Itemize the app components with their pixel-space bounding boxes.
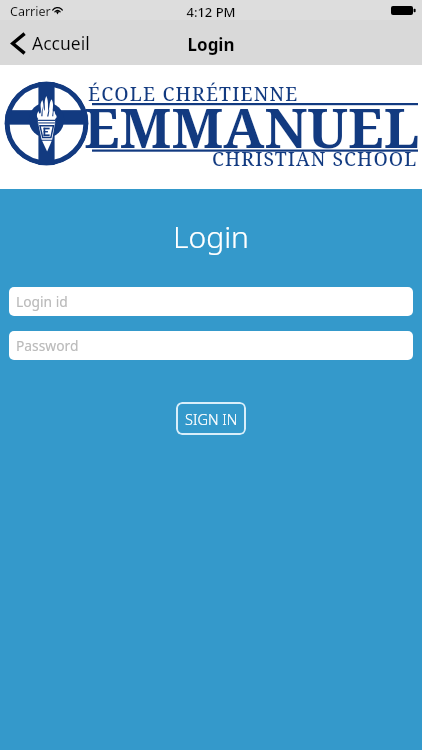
staticText: SIGN IN (185, 409, 238, 429)
staticText: CHRISTIAN SCHOOL (212, 146, 418, 172)
staticText: Accueil (32, 31, 90, 55)
staticText: Login id (16, 292, 68, 311)
button[interactable]: Password (9, 331, 413, 360)
staticText: Password (16, 336, 79, 355)
staticText: EMMANUEL (84, 90, 420, 164)
button[interactable]: SIGN IN (176, 402, 246, 435)
button[interactable]: Login id (9, 287, 413, 316)
staticText: 4:12 PM (0, 3, 422, 21)
staticText: Carrier (10, 3, 51, 20)
button[interactable]: Back to Accueil (0, 24, 102, 62)
staticText: Login (0, 33, 422, 56)
staticText: Login (0, 216, 422, 257)
staticText: ÉCOLE CHRÉTIENNE (88, 81, 299, 107)
